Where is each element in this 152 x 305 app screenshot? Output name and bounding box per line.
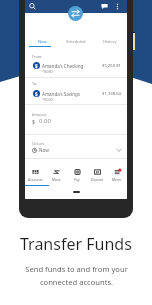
staticText: *8080 [42, 69, 53, 74]
staticText: *0000 [42, 97, 53, 102]
staticText: Now [38, 39, 47, 44]
button[interactable]: Messages [99, 1, 110, 12]
button[interactable]: More options [113, 2, 122, 11]
staticText: Amount [32, 112, 47, 117]
button[interactable]: Menu [107, 169, 127, 189]
staticText: $5,250.81 [102, 63, 122, 69]
button[interactable]: Now [25, 34, 59, 46]
staticText: Pay [74, 177, 80, 182]
staticText: Move [52, 177, 61, 182]
button[interactable]: $ [25, 89, 127, 103]
button[interactable]: Deposit [87, 169, 107, 189]
button[interactable]: Move [46, 169, 67, 189]
staticText: 0.00 [39, 117, 51, 125]
button[interactable]: $ [32, 117, 134, 125]
button[interactable]: History [93, 34, 127, 46]
staticText: Transfer Funds [20, 233, 132, 255]
staticText: To: [32, 81, 38, 86]
button[interactable]: $ [25, 61, 127, 75]
staticText: Send funds to and from your connected ac… [25, 264, 128, 288]
staticText: Amanda's Checking [42, 63, 84, 69]
staticText: $ [32, 118, 36, 125]
staticText: Deposit [91, 177, 104, 182]
staticText: Menu [112, 177, 122, 182]
staticText: From: [32, 54, 43, 59]
staticText: $ [35, 91, 38, 97]
button[interactable]: Accounts [25, 169, 46, 189]
staticText: $1,338.64 [102, 91, 122, 97]
staticText: Occurs [32, 141, 45, 146]
button[interactable]: Search [27, 1, 38, 12]
button[interactable]: Transfer [68, 6, 83, 21]
staticText: $ [35, 63, 38, 69]
staticText: Accounts [28, 177, 43, 182]
button[interactable]: Now [25, 147, 127, 153]
button[interactable]: Scheduled [59, 34, 93, 46]
staticText: Now [39, 147, 49, 153]
staticText: Scheduled [66, 39, 86, 44]
staticText: History [103, 39, 117, 44]
staticText: Amanda's Savings [42, 91, 80, 97]
button[interactable]: Pay [67, 169, 87, 189]
